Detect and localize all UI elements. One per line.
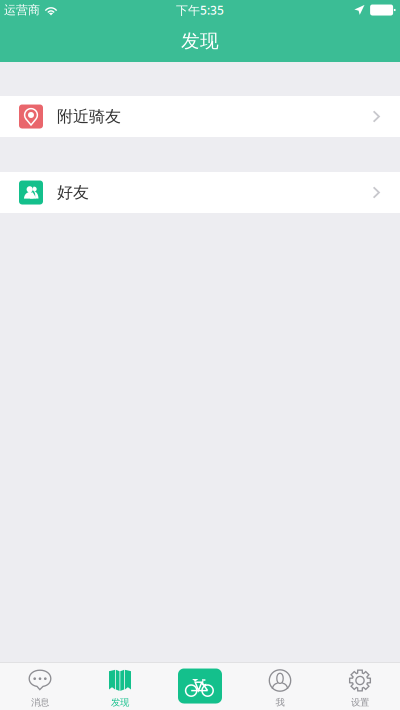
button[interactable]: 开始骑行 (160, 662, 240, 710)
staticText: 发现 (181, 29, 219, 52)
button[interactable]: 设置 (320, 662, 400, 710)
button[interactable]: 消息 (0, 662, 80, 710)
staticText: 下午5:35 (176, 2, 224, 18)
staticText: 设置 (351, 696, 369, 708)
button[interactable]: 好友 (0, 172, 400, 213)
staticText: 我 (275, 696, 284, 708)
staticText: 好友 (57, 183, 89, 202)
staticText: 附近骑友 (57, 107, 121, 126)
staticText: 发现 (111, 696, 129, 708)
button[interactable]: 附近骑友 (0, 96, 400, 137)
staticText: 消息 (31, 696, 49, 708)
staticText: 运营商 (4, 3, 40, 17)
button[interactable]: 发现 (80, 662, 160, 710)
button[interactable]: 我 (240, 662, 320, 710)
